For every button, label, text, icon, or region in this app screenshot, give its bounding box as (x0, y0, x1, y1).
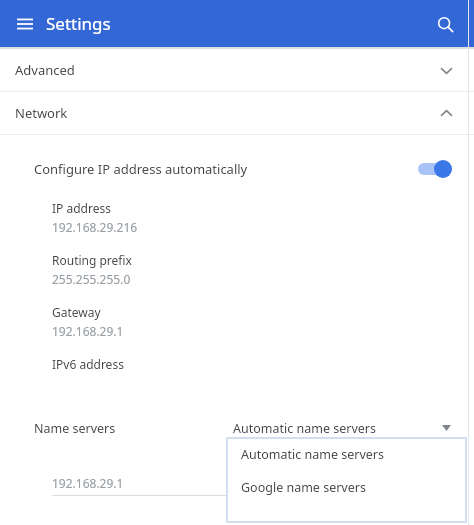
button[interactable]: Google name servers (227, 471, 466, 504)
staticText: Automatic name servers (233, 420, 442, 437)
staticText: Google name servers (241, 479, 366, 496)
staticText: Advanced (15, 61, 75, 79)
button[interactable]: Search (428, 7, 462, 41)
staticText: Automatic name servers (241, 446, 384, 463)
staticText: IPv6 address (52, 356, 124, 372)
staticText: Gateway (52, 304, 101, 320)
staticText: 192.168.29.216 (52, 219, 138, 235)
staticText: Routing prefix (52, 252, 132, 268)
staticText: 192.168.29.1 (52, 323, 124, 339)
staticText: Settings (46, 12, 111, 35)
button[interactable]: Open navigation menu (8, 7, 42, 41)
button[interactable]: Configure IP address automatically (0, 153, 474, 185)
staticText: IP address (52, 200, 111, 216)
button[interactable]: Automatic name servers (233, 414, 461, 442)
button[interactable]: Automatic name servers (227, 438, 466, 471)
staticText: Name servers (34, 420, 116, 437)
staticText: Configure IP address automatically (34, 160, 248, 178)
button[interactable]: Network (0, 92, 474, 134)
staticText: 192.168.29.1 (52, 475, 124, 491)
button[interactable]: Advanced (0, 49, 474, 91)
staticText: Network (15, 104, 68, 122)
staticText: 255.255.255.0 (52, 271, 131, 287)
